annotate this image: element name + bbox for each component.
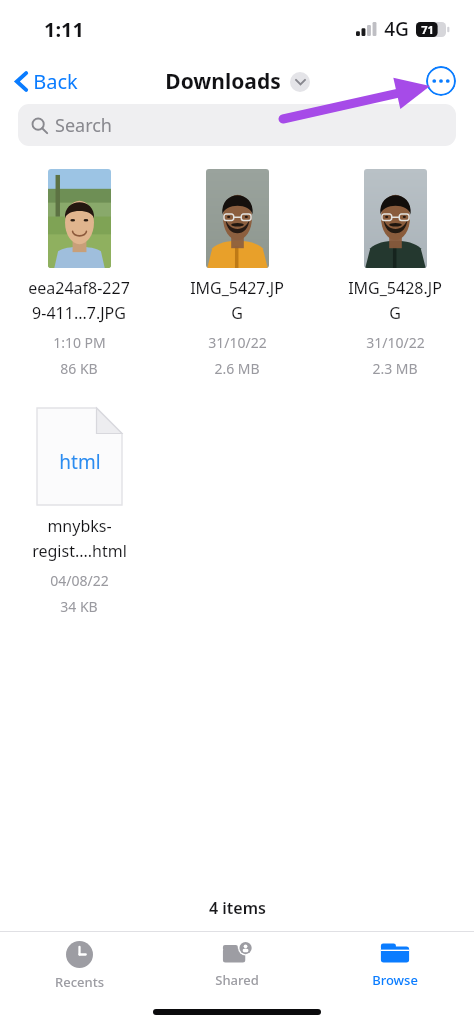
button[interactable]: Folder options: [290, 72, 310, 92]
staticText: Shared: [215, 971, 259, 989]
button[interactable]: eea24af8-227: [0, 168, 158, 378]
staticText: 04/08/22: [50, 571, 109, 590]
button[interactable]: Shared: [158, 932, 316, 994]
staticText: G: [389, 302, 401, 324]
staticText: Recents: [55, 973, 104, 991]
staticText: IMG_5427.JP: [190, 277, 284, 299]
staticText: Back: [33, 68, 78, 95]
button[interactable]: More options: [426, 66, 456, 96]
button[interactable]: Browse: [316, 932, 474, 994]
button[interactable]: Recents: [0, 932, 158, 994]
staticText: 1:10 PM: [53, 333, 106, 352]
staticText: regist....html: [32, 540, 127, 562]
staticText: 2.3 MB: [372, 359, 418, 378]
button[interactable]: IMG_5427.JP: [158, 168, 316, 378]
staticText: Search: [55, 113, 112, 138]
button[interactable]: html: [0, 406, 158, 616]
staticText: Browse: [372, 971, 418, 989]
staticText: 34 KB: [60, 597, 98, 616]
button[interactable]: IMG_5428.JP: [316, 168, 474, 378]
staticText: IMG_5428.JP: [348, 277, 442, 299]
staticText: 2.6 MB: [214, 359, 260, 378]
staticText: html: [59, 449, 101, 475]
staticText: Downloads: [165, 67, 281, 96]
button[interactable]: Back: [10, 64, 84, 99]
staticText: 71: [421, 22, 434, 37]
staticText: 4G: [384, 16, 409, 42]
staticText: 9-411...7.JPG: [32, 302, 126, 324]
staticText: 4 items: [209, 897, 266, 919]
staticText: 31/10/22: [366, 333, 425, 352]
staticText: 86 KB: [60, 359, 98, 378]
button[interactable]: Search: [18, 104, 456, 146]
staticText: mnybks-: [47, 515, 112, 537]
staticText: G: [231, 302, 243, 324]
staticText: 1:11: [44, 16, 84, 43]
staticText: eea24af8-227: [28, 277, 130, 299]
staticText: 31/10/22: [208, 333, 267, 352]
